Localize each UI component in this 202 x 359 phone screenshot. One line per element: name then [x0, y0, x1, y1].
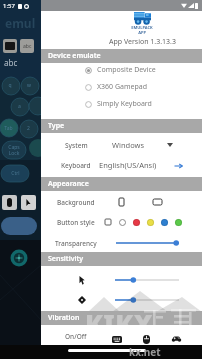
button[interactable]: Choose system	[166, 141, 174, 149]
staticText: Vibration	[48, 313, 80, 323]
staticText: Keyboard	[61, 161, 91, 170]
staticText: On/Off	[65, 332, 87, 341]
button[interactable]: Blue	[157, 216, 171, 228]
button[interactable]: Round buttons	[115, 216, 129, 228]
button[interactable]: Red	[129, 216, 143, 228]
button[interactable]: Transparency	[46, 236, 106, 250]
button[interactable]: Gamepad vibration	[169, 333, 183, 345]
button[interactable]: Square buttons	[101, 216, 115, 228]
staticText: Caps Lock	[8, 144, 20, 157]
button[interactable]: Keyboard	[46, 158, 106, 172]
button[interactable]: Mouse mode	[2, 195, 17, 210]
staticText: kx.net	[129, 345, 161, 359]
button[interactable]: Yellow	[143, 216, 157, 228]
staticText: KIKX	[85, 306, 153, 341]
staticText: EMULPACK APP	[131, 25, 153, 35]
staticText: Transparency	[55, 239, 97, 248]
button[interactable]: English(US/Ansi)	[93, 158, 163, 172]
button[interactable]: Button style	[46, 215, 106, 229]
button[interactable]: On/Off	[46, 329, 106, 343]
staticText: q	[8, 82, 12, 89]
button[interactable]: X360 Gamepad	[41, 79, 202, 95]
staticText: App Version 1.3.13.3	[109, 37, 176, 47]
staticText: Button style	[57, 218, 95, 227]
button[interactable]: Pointer sensitivity	[76, 274, 88, 286]
staticText: abc	[4, 57, 18, 68]
button[interactable]: Slider	[115, 294, 179, 306]
staticText: Simply Keyboard	[97, 99, 152, 109]
staticText: Type	[48, 121, 65, 131]
button[interactable]: Landscape background	[151, 196, 163, 208]
button[interactable]: Mouse vibration	[139, 333, 153, 345]
button[interactable]: Slider	[115, 274, 179, 286]
button[interactable]: Slider	[116, 237, 179, 249]
button[interactable]: Windows	[93, 138, 163, 152]
staticText: emul	[5, 15, 36, 31]
staticText: Sensitivity	[48, 254, 84, 264]
button[interactable]: Simply Keyboard	[41, 96, 202, 112]
button[interactable]: Open keyboard layout	[173, 160, 184, 171]
button[interactable]: Composite Device	[41, 62, 202, 78]
button[interactable]: System	[46, 138, 106, 152]
staticText: a	[18, 103, 21, 110]
staticText: Composite Device	[97, 65, 156, 75]
button[interactable]: Portrait background	[115, 196, 127, 208]
staticText: System	[65, 141, 88, 150]
staticText: w	[27, 82, 31, 89]
staticText: Device emulate	[48, 51, 101, 61]
button[interactable]: Keyboard layout	[3, 39, 17, 53]
button[interactable]: abc mode	[20, 39, 34, 53]
staticText: 2	[27, 125, 30, 132]
button[interactable]: Move sensitivity	[76, 294, 88, 306]
button[interactable]: Green	[171, 216, 185, 228]
staticText: Background	[57, 198, 95, 207]
staticText: Windows	[112, 140, 145, 150]
staticText: X360 Gamepad	[97, 82, 147, 92]
staticText: Appearance	[48, 179, 89, 189]
staticText: Ctrl	[11, 170, 20, 177]
button[interactable]: Pointer mode	[21, 195, 36, 210]
staticText: English(US/Ansi)	[99, 160, 157, 170]
button[interactable]: Keyboard vibration	[110, 333, 124, 345]
button[interactable]: Background	[46, 195, 106, 209]
staticText: abc	[23, 43, 32, 50]
staticText: 1:57	[3, 2, 15, 10]
staticText: Tab	[4, 125, 13, 132]
